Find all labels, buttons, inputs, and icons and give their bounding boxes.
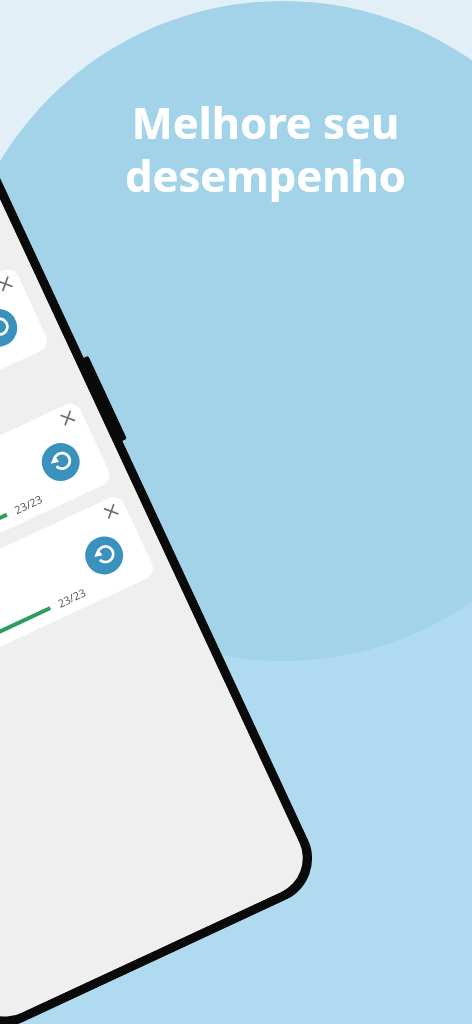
button[interactable]: Fechar <box>50 401 85 435</box>
button[interactable]: Fechar <box>0 493 157 713</box>
button[interactable]: Restaurar <box>35 437 86 487</box>
button[interactable]: Fechar <box>0 400 113 620</box>
button[interactable]: Restaurar <box>79 530 129 581</box>
staticText: 23/23 <box>12 491 45 517</box>
button[interactable]: Restaurar <box>0 303 23 353</box>
button[interactable]: Fechar <box>0 266 51 486</box>
staticText: 23/23 <box>55 584 89 611</box>
button[interactable]: Fechar <box>0 266 23 301</box>
button[interactable]: Fechar <box>94 494 128 529</box>
staticText: Melhore seu desempenho <box>125 92 406 204</box>
